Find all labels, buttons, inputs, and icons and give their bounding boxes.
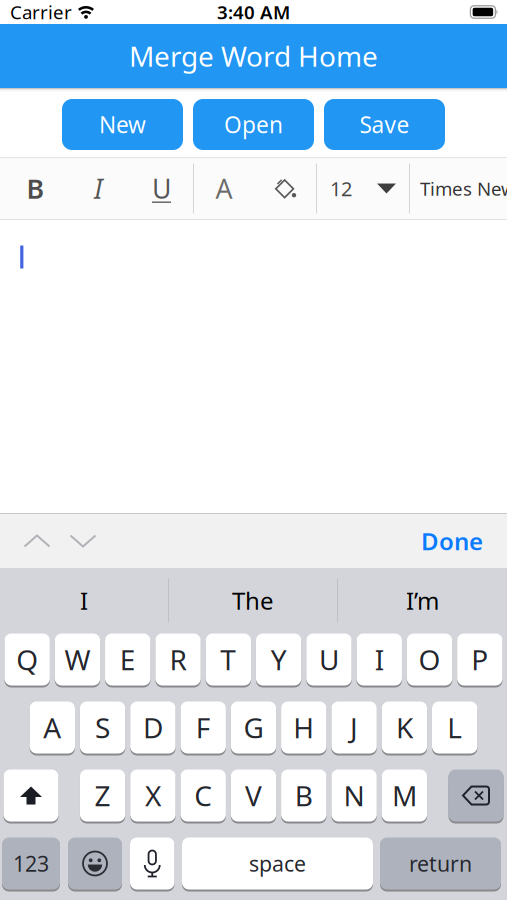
staticText: The xyxy=(232,585,274,616)
button[interactable]: Font family xyxy=(410,158,507,219)
button[interactable]: C xyxy=(180,769,226,822)
staticText: B xyxy=(295,777,313,814)
button[interactable]: Bold xyxy=(4,158,67,219)
staticText: B xyxy=(26,171,44,206)
staticText: Y xyxy=(271,641,287,678)
button[interactable]: Underline xyxy=(130,158,193,219)
staticText: D xyxy=(143,709,163,746)
button[interactable]: Dictate xyxy=(130,837,174,890)
button[interactable]: Emoji xyxy=(68,837,122,890)
button[interactable]: space xyxy=(182,837,373,890)
button[interactable]: O xyxy=(407,633,452,686)
button[interactable]: X xyxy=(130,769,176,822)
staticText: 12 xyxy=(330,175,352,202)
staticText: A xyxy=(215,171,232,206)
staticText: Merge Word Home xyxy=(129,37,378,75)
staticText: T xyxy=(220,641,236,678)
staticText: N xyxy=(344,777,365,814)
staticText: Q xyxy=(16,641,38,678)
staticText: Carrier xyxy=(10,0,72,24)
staticText: F xyxy=(196,709,211,746)
button[interactable]: D xyxy=(130,701,176,754)
button[interactable]: The xyxy=(169,568,337,633)
staticText: New xyxy=(99,109,146,139)
staticText: Done xyxy=(421,525,483,557)
staticText: H xyxy=(293,709,314,746)
button[interactable]: L xyxy=(432,701,477,754)
staticText: J xyxy=(350,709,358,746)
button[interactable]: M xyxy=(382,769,427,822)
button[interactable]: T xyxy=(206,633,251,686)
button[interactable]: R xyxy=(155,633,201,686)
staticText: 123 xyxy=(13,849,49,878)
button[interactable]: Open xyxy=(193,99,314,150)
staticText: Open xyxy=(224,109,283,139)
staticText: O xyxy=(419,641,441,678)
button[interactable]: Y xyxy=(256,633,301,686)
staticText: I xyxy=(94,171,103,206)
staticText: C xyxy=(194,777,212,814)
button[interactable]: Q xyxy=(4,633,50,686)
staticText: return xyxy=(409,849,472,878)
button[interactable]: Shift xyxy=(3,769,58,822)
button[interactable]: Next field xyxy=(60,514,106,568)
staticText: E xyxy=(120,641,136,678)
button[interactable]: Delete xyxy=(448,769,503,822)
staticText: Z xyxy=(95,777,111,814)
button[interactable]: A xyxy=(30,701,75,754)
button[interactable]: return xyxy=(380,837,501,890)
button[interactable]: P xyxy=(457,633,503,686)
staticText: G xyxy=(243,709,263,746)
button[interactable]: F xyxy=(180,701,226,754)
button[interactable]: New xyxy=(62,99,183,150)
button[interactable]: S xyxy=(80,701,125,754)
staticText: R xyxy=(170,641,187,678)
staticText: V xyxy=(245,777,262,814)
button[interactable]: W xyxy=(55,633,100,686)
button[interactable]: N xyxy=(331,769,377,822)
button[interactable]: G xyxy=(231,701,276,754)
staticText: 3:40 AM xyxy=(217,0,290,24)
staticText: I’m xyxy=(406,585,439,616)
button[interactable]: H xyxy=(281,701,326,754)
staticText: Times New Roman xyxy=(420,176,507,201)
staticText: U xyxy=(152,171,171,206)
button[interactable]: I xyxy=(357,633,402,686)
button[interactable]: B xyxy=(281,769,326,822)
staticText: U xyxy=(319,641,339,678)
staticText: space xyxy=(249,849,306,878)
staticText: K xyxy=(396,709,413,746)
button[interactable]: E xyxy=(105,633,150,686)
staticText: X xyxy=(145,777,161,814)
staticText: A xyxy=(43,709,61,746)
button[interactable]: 123 xyxy=(2,837,60,890)
staticText: Save xyxy=(359,109,409,139)
button[interactable]: U xyxy=(306,633,352,686)
button[interactable]: Italic xyxy=(67,158,130,219)
button[interactable]: Previous field xyxy=(14,514,60,568)
button[interactable]: Font size xyxy=(317,158,409,219)
button[interactable]: V xyxy=(231,769,276,822)
button[interactable]: J xyxy=(331,701,377,754)
button[interactable]: I’m xyxy=(338,568,507,633)
button[interactable]: Highlight color xyxy=(254,158,316,219)
staticText: W xyxy=(64,641,90,678)
staticText: I xyxy=(375,641,384,678)
staticText: P xyxy=(471,641,488,678)
staticText: S xyxy=(95,709,110,746)
button[interactable]: Z xyxy=(80,769,125,822)
staticText: L xyxy=(447,709,462,746)
button[interactable]: Text color xyxy=(194,158,254,219)
button[interactable]: Done xyxy=(421,525,507,557)
button[interactable]: K xyxy=(382,701,427,754)
staticText: M xyxy=(392,777,417,814)
button[interactable]: I xyxy=(0,568,168,633)
button[interactable]: Save xyxy=(324,99,445,150)
staticText: I xyxy=(80,585,88,616)
